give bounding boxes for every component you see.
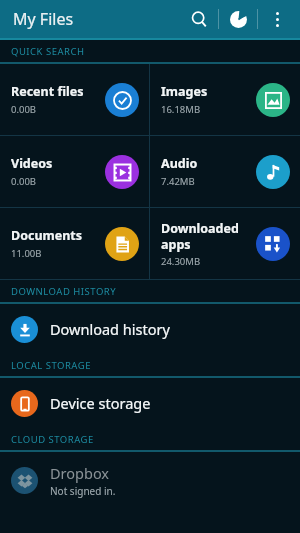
button[interactable]: Download history [0,304,300,354]
button[interactable]: More options [258,0,296,38]
button[interactable]: Videos [0,136,149,207]
staticText: 7.42MB [161,175,195,188]
staticText: LOCAL STORAGE [11,359,91,372]
button[interactable]: Audio [150,136,300,207]
button[interactable]: Downloaded apps [150,208,300,279]
staticText: 0.00B [11,103,37,116]
staticText: 16.18MB [161,103,201,116]
button[interactable]: Search [180,0,218,38]
button[interactable]: Recent files [0,64,149,135]
staticText: QUICK SEARCH [11,45,85,58]
staticText: CLOUD STORAGE [11,433,94,446]
staticText: Dropbox [50,463,110,483]
staticText: 0.00B [11,175,37,188]
staticText: 24.30MB [161,255,201,268]
staticText: Videos [11,155,53,172]
staticText: Images [161,83,208,100]
staticText: Download history [50,319,170,339]
staticText: Audio [161,155,198,172]
staticText: DOWNLOAD HISTORY [11,285,117,298]
button[interactable]: Documents [0,208,149,279]
staticText: Documents [11,227,83,244]
staticText: 11.00B [11,247,42,260]
staticText: My Files [13,8,74,30]
staticText: Device storage [50,393,151,413]
button[interactable]: Dropbox [0,452,300,508]
button[interactable]: Images [150,64,300,135]
staticText: Not signed in. [50,484,116,498]
button[interactable]: Device storage [0,378,300,428]
staticText: Recent files [11,83,84,100]
staticText: Downloaded apps [161,220,239,252]
button[interactable]: Storage usage [219,0,257,38]
